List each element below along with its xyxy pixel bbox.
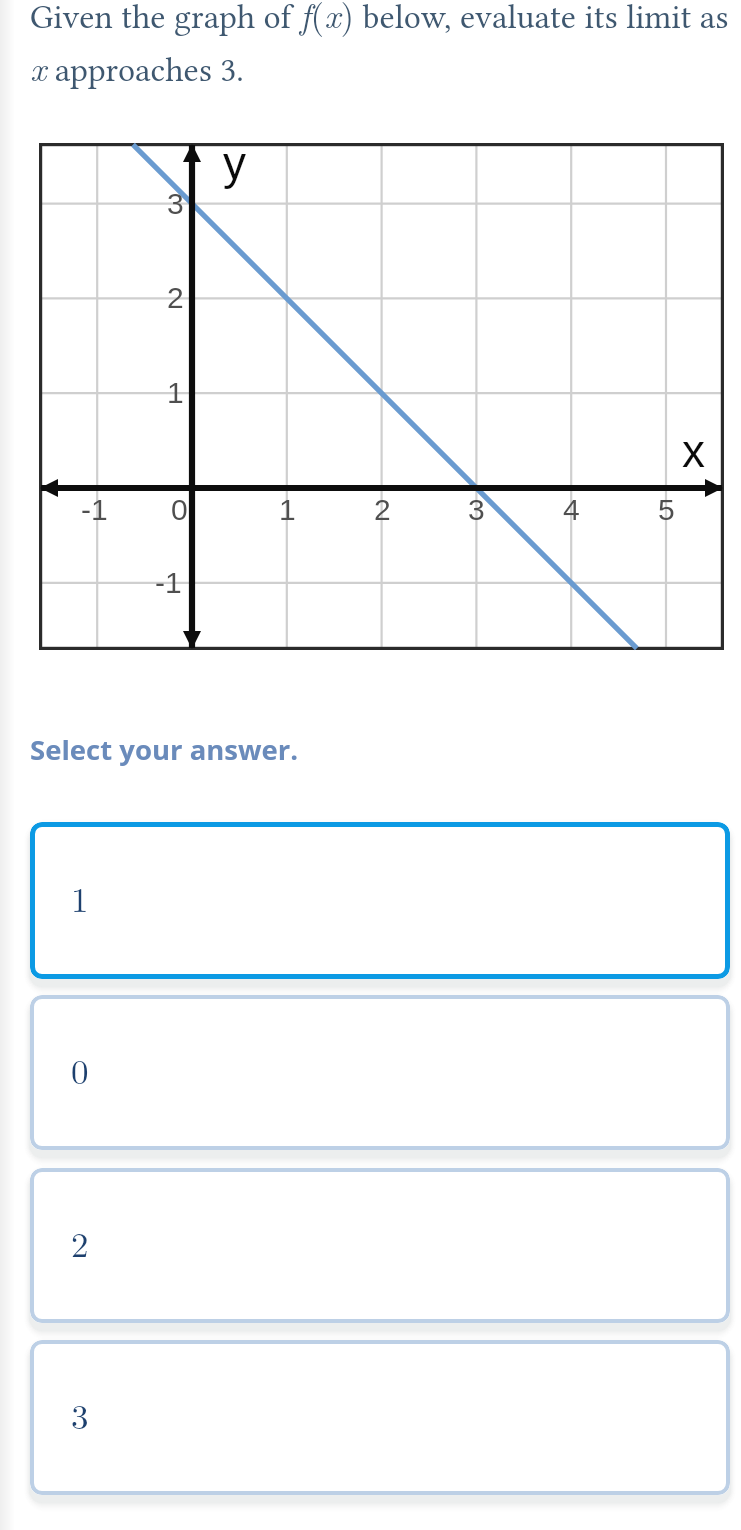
staticText: 0	[71, 1045, 89, 1095]
staticText: 2	[71, 1218, 89, 1268]
staticText: -1	[81, 493, 108, 527]
staticText: 2	[167, 281, 184, 315]
staticText: Select your answer.	[30, 731, 299, 768]
button[interactable]: 0	[30, 995, 730, 1150]
staticText: Given the graph of f(x) below, evaluate …	[30, 0, 729, 91]
staticText: 3	[468, 493, 485, 527]
staticText: 2	[374, 493, 391, 527]
staticText: 4	[563, 493, 580, 527]
staticText: 5	[658, 493, 675, 527]
staticText: x	[682, 425, 705, 476]
staticText: y	[223, 137, 246, 188]
staticText: 0	[171, 493, 188, 527]
button[interactable]: 1	[30, 822, 730, 979]
staticText: 3	[167, 187, 184, 221]
button[interactable]: 2	[30, 1168, 730, 1323]
staticText: 1	[167, 376, 184, 410]
button[interactable]: 3	[30, 1340, 730, 1495]
staticText: 3	[71, 1390, 89, 1440]
staticText: 1	[71, 873, 89, 923]
staticText: -1	[155, 566, 182, 600]
staticText: 1	[279, 493, 296, 527]
